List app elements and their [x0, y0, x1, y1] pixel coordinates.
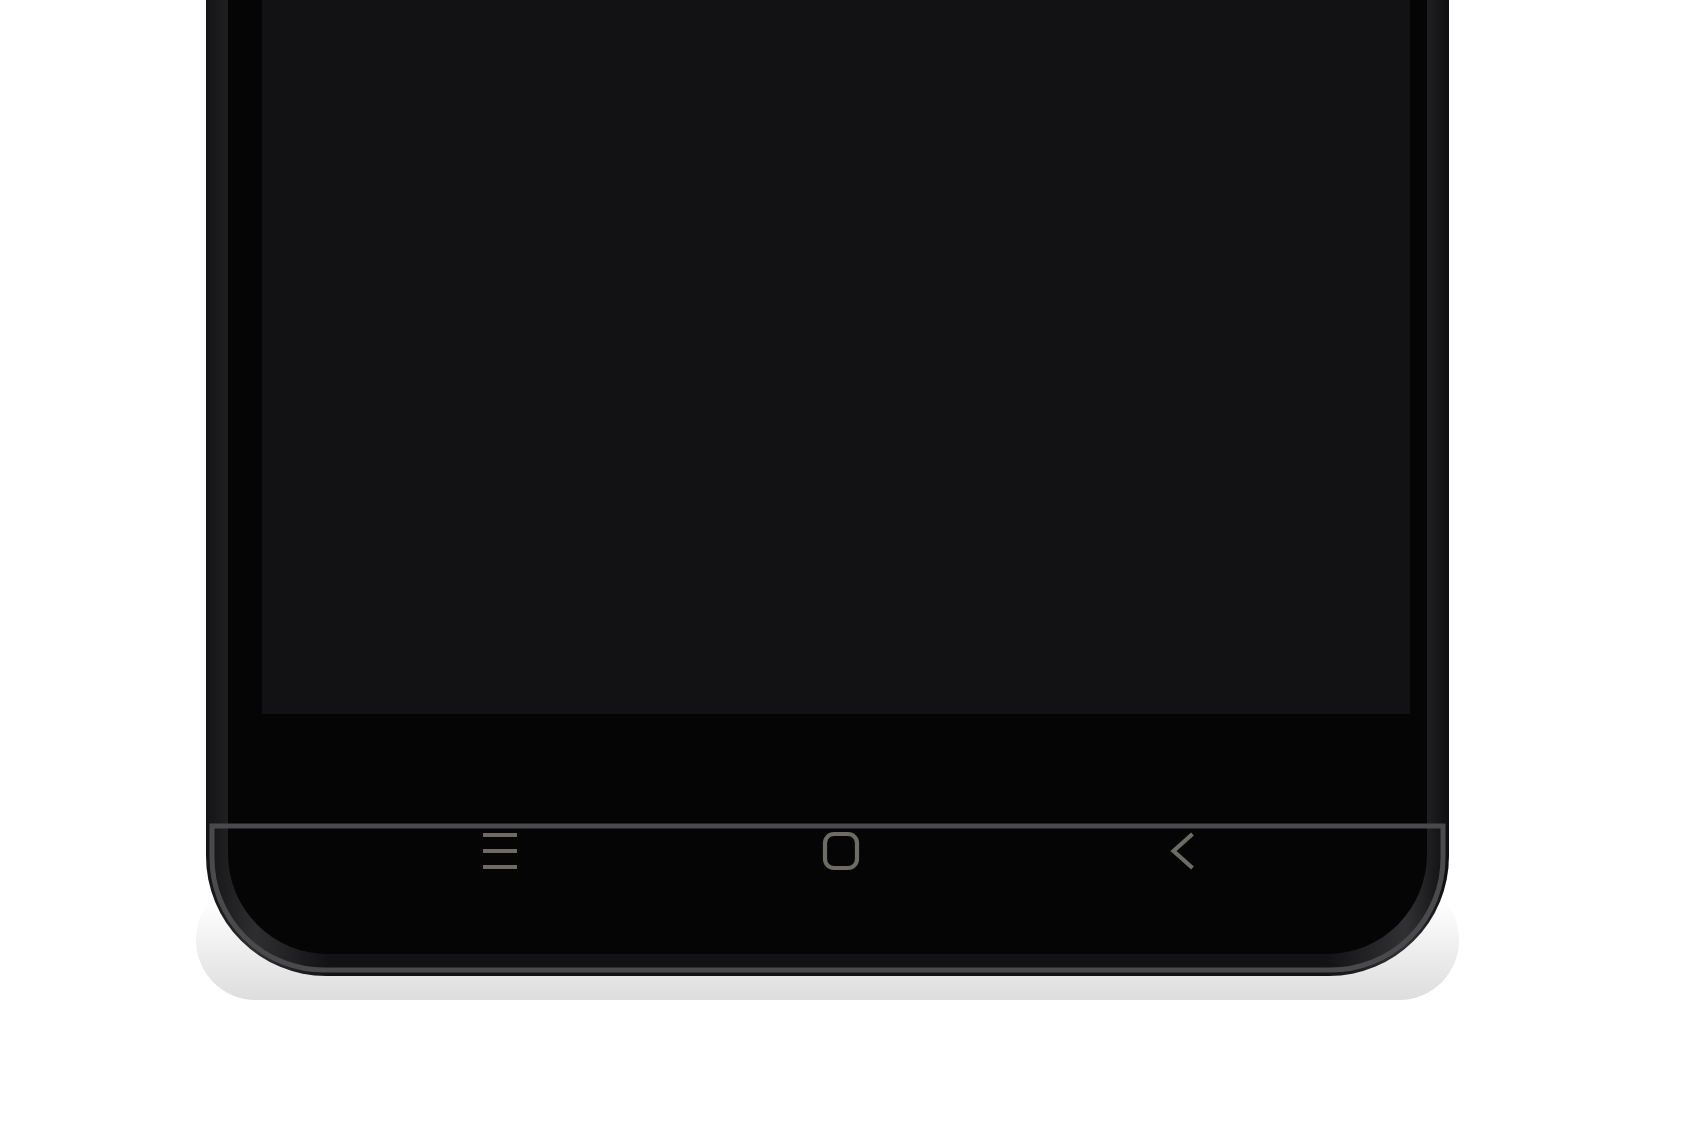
button[interactable]: Back: [1033, 751, 1333, 951]
button[interactable]: Menu: [350, 751, 650, 951]
button[interactable]: Home: [691, 751, 991, 951]
